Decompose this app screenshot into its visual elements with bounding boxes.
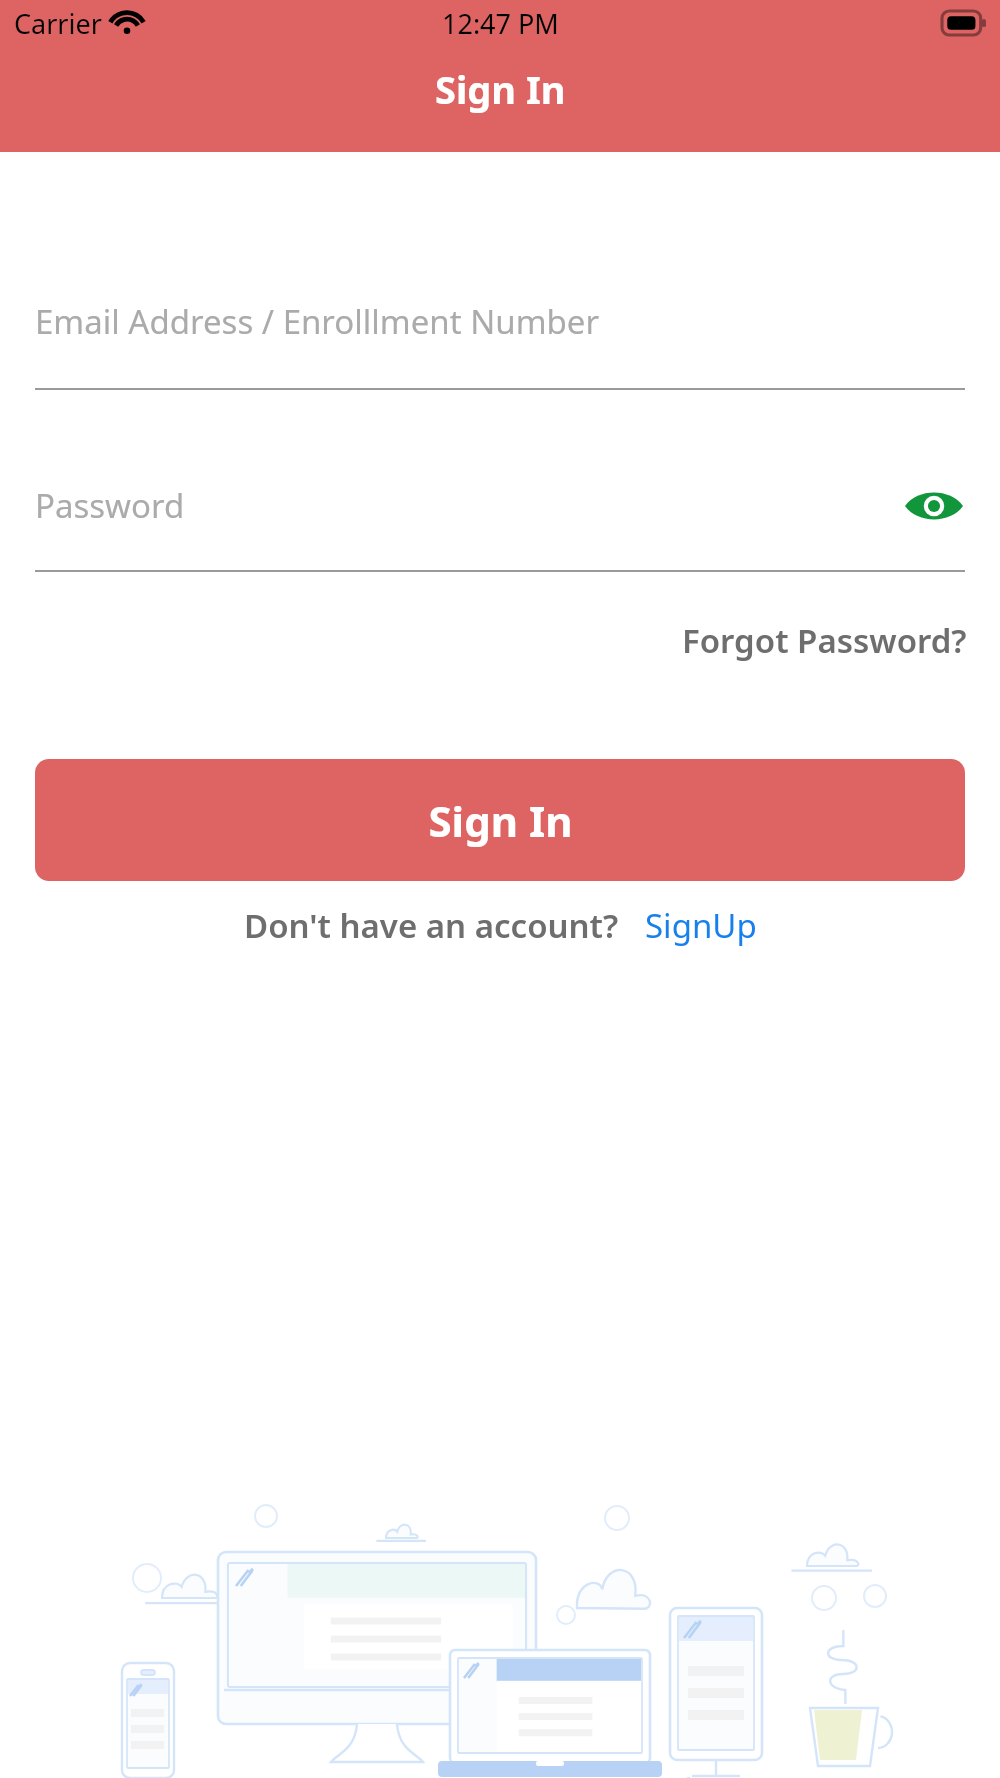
button[interactable]: SignUp	[645, 903, 757, 948]
button[interactable]: Forgot Password?	[682, 618, 967, 663]
staticText: Email Address / Enrolllment Number	[35, 299, 600, 344]
button[interactable]: Show password	[903, 484, 965, 528]
button[interactable]: Sign In	[35, 759, 965, 881]
staticText: SignUp	[645, 903, 757, 948]
staticText: Sign In	[428, 792, 573, 849]
staticText: Password	[35, 483, 185, 528]
staticText: Don't have an account?	[244, 903, 619, 948]
staticText: Sign In	[435, 63, 566, 115]
staticText: 12:47 PM	[442, 5, 559, 42]
button[interactable]: Email Address / Enrolllment Number	[35, 299, 965, 390]
button[interactable]: Password	[35, 483, 903, 528]
staticText: Forgot Password?	[682, 618, 967, 663]
staticText: Carrier	[14, 5, 102, 42]
